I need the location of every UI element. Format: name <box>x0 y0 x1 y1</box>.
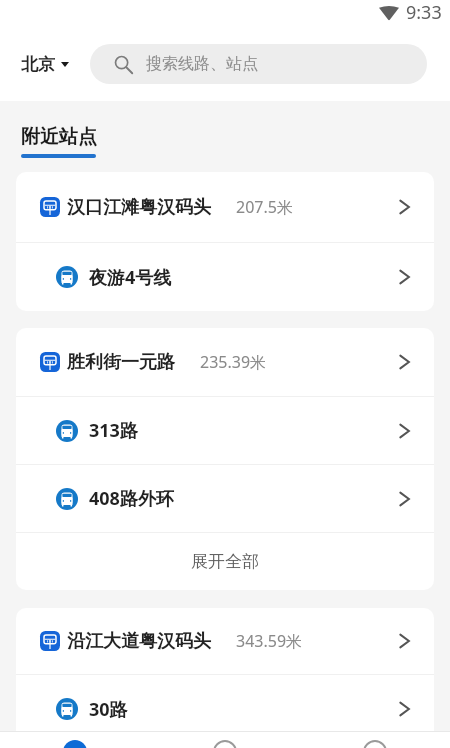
staticText: 408路外环 <box>89 486 174 511</box>
button[interactable]: 408路外环 <box>16 465 434 532</box>
button[interactable]: 汉口江滩粤汉码头 <box>16 172 434 242</box>
staticText: 343.59米 <box>236 630 303 652</box>
staticText: 胜利街一元路 <box>67 351 175 374</box>
staticText: 汉口江滩粤汉码头 <box>67 196 211 219</box>
button[interactable]: 展开全部 <box>16 533 434 590</box>
staticText: 附近站点 <box>21 125 97 149</box>
staticText: 207.5米 <box>236 196 293 218</box>
staticText: 搜索线路、站点 <box>146 54 258 74</box>
staticText: 235.39米 <box>200 351 267 373</box>
staticText: 展开全部 <box>191 551 259 572</box>
button[interactable]: 北京 <box>21 54 69 75</box>
button[interactable]: 30路 <box>16 675 434 743</box>
staticText: 313路 <box>89 418 138 443</box>
button[interactable]: 夜游4号线 <box>16 243 434 311</box>
staticText: 北京 <box>21 54 55 75</box>
button[interactable]: Map <box>150 732 300 748</box>
staticText: 30路 <box>89 697 128 722</box>
staticText: 沿江大道粤汉码头 <box>67 630 211 653</box>
staticText: 夜游4号线 <box>89 265 172 290</box>
button[interactable]: 胜利街一元路 <box>16 328 434 396</box>
button[interactable]: 搜索线路、站点 <box>90 44 427 84</box>
button[interactable]: Nearby <box>0 732 150 748</box>
button[interactable]: Profile <box>300 732 450 748</box>
button[interactable]: 沿江大道粤汉码头 <box>16 608 434 674</box>
staticText: 9:33 <box>406 0 442 24</box>
button[interactable]: 313路 <box>16 397 434 464</box>
